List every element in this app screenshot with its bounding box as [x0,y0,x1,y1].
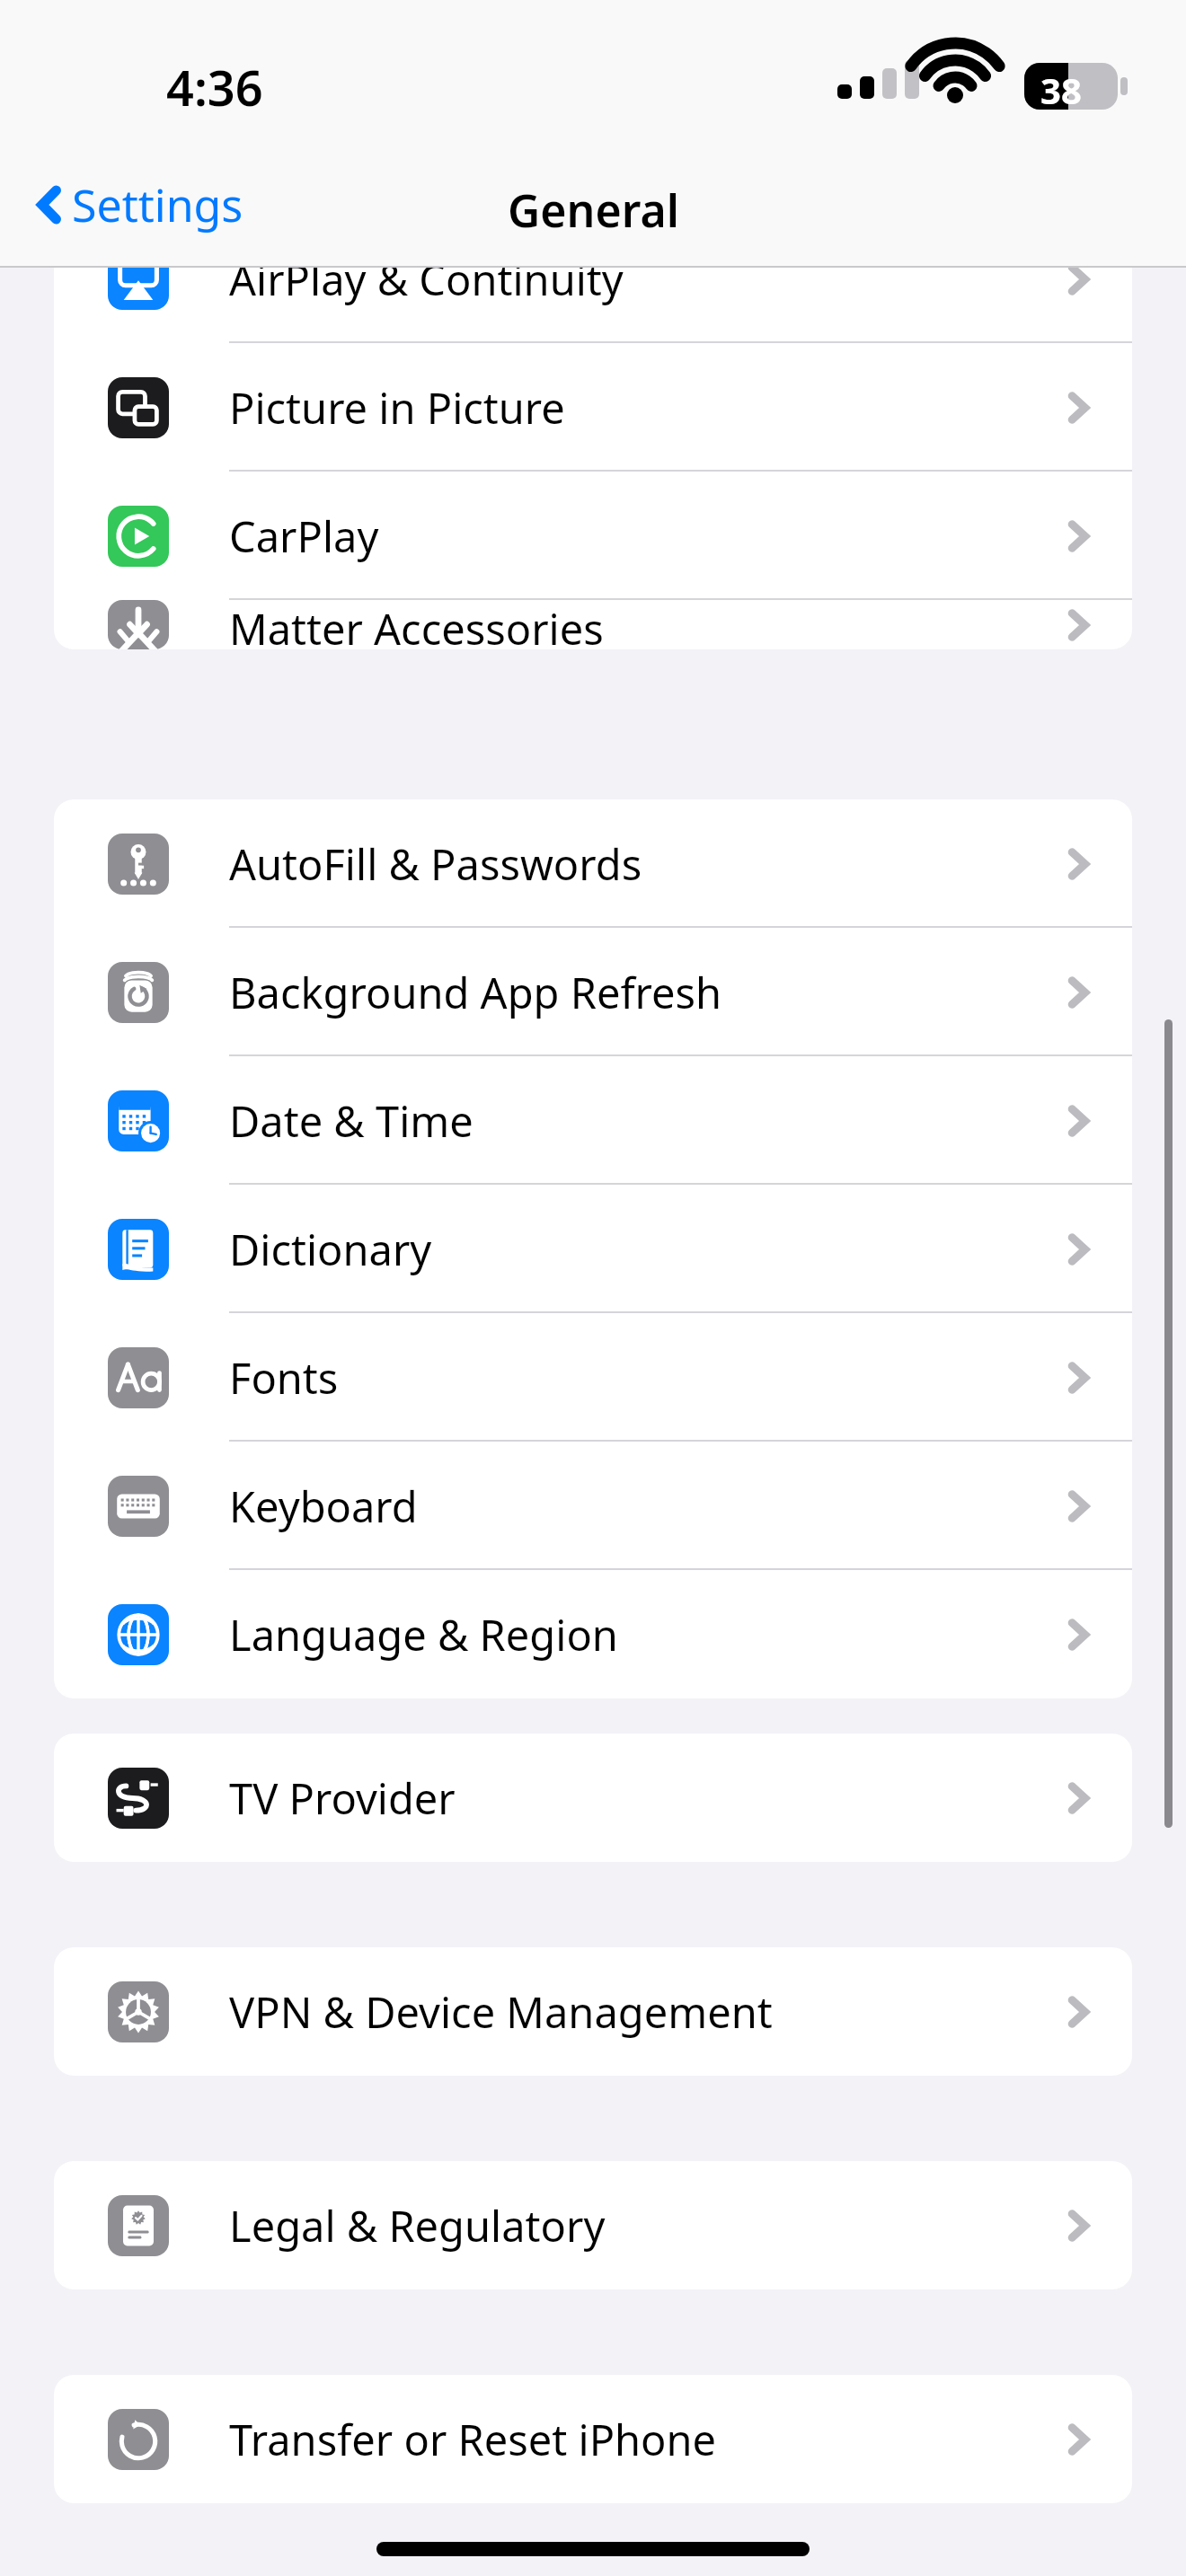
staticText: Language & Region [229,1606,618,1663]
button[interactable]: Matter Accessories [54,600,1132,649]
button[interactable]: Background App Refresh [54,928,1132,1056]
staticText: VPN & Device Management [229,1983,773,2041]
staticText: Fonts [229,1349,339,1407]
button[interactable]: Language & Region [54,1570,1132,1698]
staticText: CarPlay [229,507,379,565]
button[interactable]: CarPlay [54,472,1132,600]
button[interactable]: Fonts [54,1313,1132,1442]
staticText: 4:36 [166,54,263,120]
staticText: Date & Time [229,1092,474,1150]
staticText: Settings [72,174,243,235]
staticText: TV Provider [229,1769,456,1827]
button[interactable]: AirPlay & Continuity [54,268,1132,343]
staticText: Legal & Regulatory [229,2197,606,2254]
staticText: General [508,180,679,241]
staticText: Background App Refresh [229,964,722,1021]
staticText: AirPlay & Continuity [229,268,624,308]
button[interactable]: TV Provider [54,1734,1132,1862]
button[interactable]: Settings [27,169,251,241]
staticText: Picture in Picture [229,379,565,437]
staticText: 38 [1040,66,1082,114]
button[interactable]: Dictionary [54,1185,1132,1313]
staticText: Dictionary [229,1221,432,1278]
staticText: Keyboard [229,1478,418,1535]
button[interactable]: VPN & Device Management [54,1947,1132,2076]
button[interactable]: Legal & Regulatory [54,2161,1132,2289]
button[interactable]: Transfer or Reset iPhone [54,2375,1132,2503]
staticText: Matter Accessories [229,600,604,649]
button[interactable]: Picture in Picture [54,343,1132,472]
button[interactable]: Keyboard [54,1442,1132,1570]
staticText: Transfer or Reset iPhone [229,2411,717,2468]
staticText: AutoFill & Passwords [229,835,642,893]
button[interactable]: Date & Time [54,1056,1132,1185]
button[interactable]: AutoFill & Passwords [54,799,1132,928]
